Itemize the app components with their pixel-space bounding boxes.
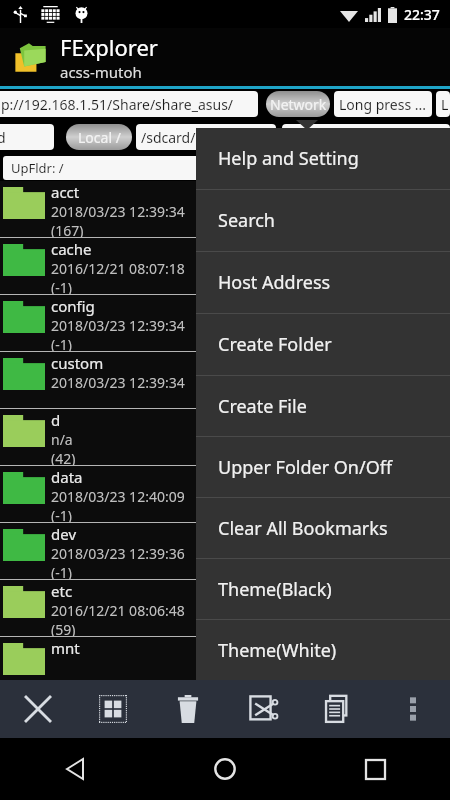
button[interactable]: Recent apps <box>300 738 450 800</box>
button[interactable]: Theme(White) <box>196 620 450 680</box>
button[interactable]: d <box>0 409 450 465</box>
staticText: Clear All Bookmarks <box>218 516 388 541</box>
staticText: Upper Folder On/Off <box>218 455 393 480</box>
button[interactable]: Host Address <box>196 252 450 313</box>
staticText: (167) <box>51 221 84 237</box>
button[interactable]: Select All <box>75 680 150 738</box>
staticText: (59) <box>51 620 76 636</box>
staticText: data <box>51 467 83 487</box>
staticText: d <box>0 128 6 147</box>
staticText: cache <box>51 239 92 259</box>
button[interactable]: config <box>0 295 450 351</box>
staticText: UpFldr: / <box>11 159 64 177</box>
staticText: (-1) <box>51 335 72 351</box>
staticText: Search <box>218 208 275 233</box>
staticText: etc <box>51 581 73 601</box>
staticText: config <box>51 296 95 316</box>
staticText: (42) <box>51 449 76 465</box>
button[interactable]: Upper Folder On/Off <box>196 437 450 497</box>
staticText: Host Address <box>218 270 331 295</box>
button[interactable]: Home <box>150 738 300 800</box>
button[interactable]: cache <box>0 238 450 294</box>
staticText: (-1) <box>51 278 72 294</box>
button[interactable]: etc <box>0 580 450 636</box>
button[interactable]: Local / <box>66 124 132 150</box>
staticText: d <box>51 410 61 430</box>
staticText: (-1) <box>51 563 72 579</box>
button[interactable]: custom <box>0 352 450 408</box>
staticText: custom <box>51 353 104 373</box>
staticText: Help and Setting <box>218 146 359 171</box>
button[interactable]: Lo <box>436 91 450 117</box>
button[interactable]: More options <box>375 680 450 738</box>
button[interactable]: acct <box>0 181 450 237</box>
staticText: Lo <box>441 95 445 114</box>
button[interactable]: Back <box>0 738 150 800</box>
button[interactable]: Theme(Black) <box>196 559 450 619</box>
button[interactable]: Copy <box>300 680 375 738</box>
button[interactable]: Create File <box>196 376 450 436</box>
staticText: 2018/03/23 12:40:09 <box>51 487 185 506</box>
button[interactable]: Network <box>266 91 330 117</box>
staticText: Create File <box>218 394 307 419</box>
button[interactable]: Delete <box>150 680 225 738</box>
button[interactable]: dev <box>0 523 450 579</box>
staticText: dev <box>51 524 77 544</box>
staticText: Local / <box>78 128 121 147</box>
button[interactable] <box>282 124 450 150</box>
staticText: 2016/12/21 08:06:48 <box>51 601 185 620</box>
button[interactable]: Long press ... <box>334 91 432 117</box>
button[interactable]: p://192.168.1.51/Share/share_asus/ <box>0 91 258 117</box>
staticText: Network <box>270 95 327 114</box>
staticText: 2018/03/23 12:39:36 <box>51 544 185 563</box>
staticText: Create Folder <box>218 332 332 357</box>
button[interactable]: data <box>0 466 450 522</box>
staticText: Theme(White) <box>218 638 337 663</box>
staticText: 2018/03/23 12:39:34 <box>51 373 185 392</box>
staticText: /sdcard/s <box>141 128 203 147</box>
staticText: 2018/03/23 12:39:34 <box>51 202 185 221</box>
staticText: acct <box>51 182 80 202</box>
button[interactable]: UpFldr: / <box>3 156 447 180</box>
staticText: acss-mutoh <box>60 62 142 82</box>
button[interactable]: /sdcard/s <box>136 124 276 150</box>
staticText: 22:37 <box>404 5 440 24</box>
button[interactable]: Help and Setting <box>196 128 450 189</box>
staticText: (-1) <box>51 506 72 522</box>
staticText: 2016/12/21 08:07:18 <box>51 259 185 278</box>
staticText: 2018/03/23 12:39:34 <box>51 316 185 335</box>
staticText: Long press ... <box>339 95 427 114</box>
button[interactable]: Cut <box>225 680 300 738</box>
staticText: Theme(Black) <box>218 577 332 602</box>
button[interactable]: Clear All Bookmarks <box>196 498 450 558</box>
staticText: FExplorer <box>60 32 158 62</box>
staticText: mnt <box>51 638 80 658</box>
button[interactable]: mnt <box>0 637 450 680</box>
button[interactable]: d <box>0 124 54 150</box>
button[interactable]: Close <box>0 680 75 738</box>
staticText: n/a <box>51 430 73 449</box>
staticText: p://192.168.1.51/Share/share_asus/ <box>1 95 234 114</box>
button[interactable]: Create Folder <box>196 314 450 375</box>
button[interactable]: Search <box>196 190 450 251</box>
